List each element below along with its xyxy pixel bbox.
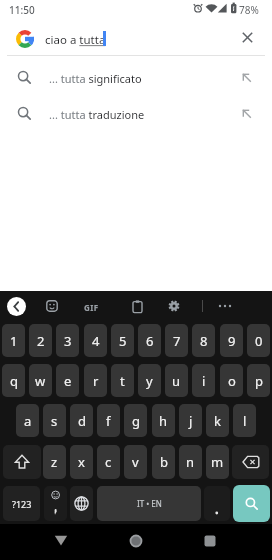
- button[interactable]: [233, 485, 270, 522]
- staticText: h: [159, 412, 168, 430]
- staticText: ciao a tutta: [45, 32, 106, 48]
- button[interactable]: l: [233, 404, 256, 437]
- button[interactable]: e: [56, 364, 79, 397]
- staticText: 0: [255, 332, 263, 350]
- button[interactable]: b: [152, 445, 175, 479]
- button[interactable]: [242, 32, 253, 43]
- staticText: 4: [92, 332, 100, 350]
- button[interactable]: [204, 486, 230, 521]
- button[interactable]: 0: [247, 324, 270, 357]
- staticText: 1: [10, 332, 18, 350]
- button[interactable]: n: [179, 445, 202, 479]
- button[interactable]: [3, 445, 41, 479]
- staticText: 3: [64, 332, 72, 350]
- button[interactable]: s: [43, 404, 66, 437]
- staticText: u: [172, 372, 181, 390]
- staticText: b: [160, 453, 168, 471]
- button[interactable]: d: [70, 404, 93, 437]
- button[interactable]: r: [84, 364, 107, 397]
- button[interactable]: g: [124, 404, 147, 437]
- staticText: y: [146, 372, 153, 390]
- staticText: x: [78, 453, 85, 471]
- button[interactable]: z: [43, 445, 66, 479]
- staticText: o: [228, 372, 236, 390]
- button[interactable]: [7, 297, 26, 316]
- button[interactable]: [44, 486, 67, 521]
- staticText: 2: [37, 332, 45, 350]
- button[interactable]: i: [192, 364, 215, 397]
- button[interactable]: [215, 300, 235, 312]
- button[interactable]: [46, 300, 58, 312]
- staticText: 5: [119, 332, 127, 350]
- staticText: g: [132, 412, 140, 430]
- staticText: 8: [200, 332, 208, 350]
- button[interactable]: w: [29, 364, 52, 397]
- button[interactable]: q: [2, 364, 25, 397]
- button[interactable]: [132, 300, 143, 313]
- staticText: d: [78, 412, 86, 430]
- button[interactable]: 2: [29, 324, 52, 357]
- staticText: 9: [228, 332, 236, 350]
- button[interactable]: [168, 300, 180, 312]
- button[interactable]: 4: [84, 324, 107, 357]
- staticText: c: [105, 453, 112, 471]
- button[interactable]: 5: [111, 324, 134, 357]
- staticText: a: [24, 412, 32, 430]
- button[interactable]: [232, 445, 269, 479]
- button[interactable]: u: [165, 364, 188, 397]
- staticText: r: [93, 372, 99, 390]
- staticText: e: [64, 372, 72, 390]
- staticText: ?123: [12, 498, 32, 510]
- staticText: ... tutta traduzione: [49, 107, 145, 122]
- button[interactable]: 3: [56, 324, 79, 357]
- button[interactable]: [16, 30, 34, 48]
- staticText: t: [120, 372, 125, 390]
- staticText: i: [202, 372, 206, 390]
- button[interactable]: o: [220, 364, 243, 397]
- button[interactable]: h: [152, 404, 175, 437]
- button[interactable]: [70, 486, 93, 521]
- button[interactable]: [204, 535, 216, 547]
- staticText: ... tutta significato: [49, 71, 142, 86]
- staticText: 6: [146, 332, 154, 350]
- staticText: IT • EN: [137, 498, 162, 509]
- button[interactable]: 1: [2, 324, 25, 357]
- button[interactable]: ?123: [3, 486, 40, 521]
- staticText: n: [186, 453, 195, 471]
- staticText: m: [211, 453, 224, 471]
- staticText: p: [255, 372, 263, 390]
- button[interactable]: 7: [165, 324, 188, 357]
- button[interactable]: 6: [138, 324, 161, 357]
- staticText: l: [243, 412, 247, 430]
- button[interactable]: ... tutta traduzione: [0, 96, 272, 132]
- button[interactable]: t: [111, 364, 134, 397]
- staticText: s: [51, 412, 58, 430]
- staticText: q: [10, 372, 18, 390]
- button[interactable]: 8: [192, 324, 215, 357]
- staticText: 78%: [239, 3, 259, 17]
- staticText: 7: [173, 332, 181, 350]
- button[interactable]: m: [206, 445, 229, 479]
- button[interactable]: 9: [220, 324, 243, 357]
- button[interactable]: f: [97, 404, 120, 437]
- staticText: z: [51, 453, 58, 471]
- button[interactable]: ... tutta significato: [0, 60, 272, 96]
- staticText: GIF: [84, 302, 99, 313]
- button[interactable]: k: [206, 404, 229, 437]
- button[interactable]: a: [16, 404, 39, 437]
- button[interactable]: p: [247, 364, 270, 397]
- staticText: k: [214, 412, 221, 430]
- staticText: 11:50: [9, 3, 35, 17]
- staticText: j: [189, 412, 193, 430]
- button[interactable]: c: [97, 445, 120, 479]
- button[interactable]: v: [124, 445, 147, 479]
- button[interactable]: IT • EN: [97, 486, 201, 521]
- staticText: w: [35, 372, 46, 390]
- staticText: v: [132, 453, 139, 471]
- staticText: f: [106, 412, 111, 430]
- button[interactable]: j: [179, 404, 202, 437]
- button[interactable]: [129, 534, 143, 548]
- button[interactable]: y: [138, 364, 161, 397]
- button[interactable]: [54, 535, 68, 547]
- button[interactable]: x: [70, 445, 93, 479]
